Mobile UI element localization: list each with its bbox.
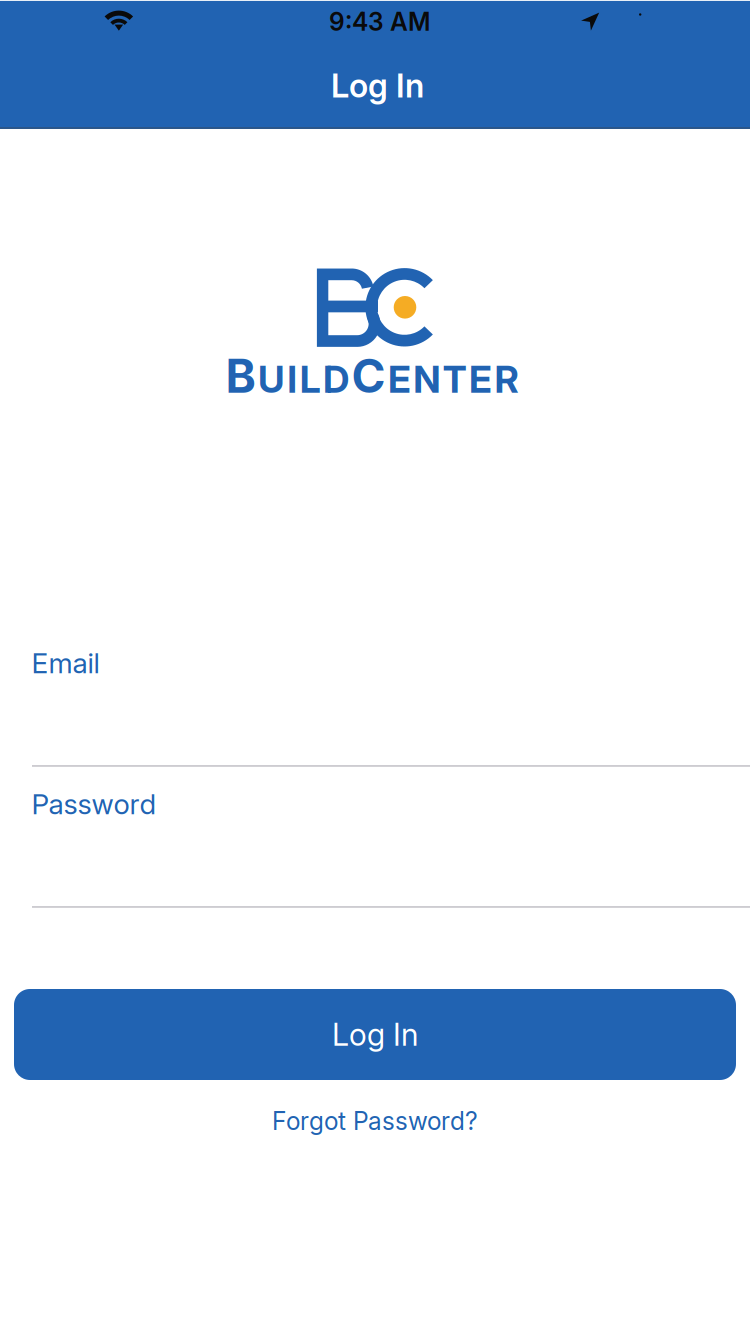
staticText: C	[351, 348, 385, 404]
button[interactable]: Forgot Password?	[225, 1090, 525, 1152]
staticText: B	[225, 348, 255, 404]
staticText: Email	[31, 646, 99, 680]
staticText: Password	[31, 787, 156, 821]
staticText: Log In	[332, 1016, 418, 1053]
staticText: R	[494, 357, 518, 402]
staticText: 9:43 AM	[329, 7, 430, 37]
button[interactable]: Log In	[14, 989, 736, 1080]
staticText: E	[388, 357, 411, 402]
staticText: E	[469, 357, 492, 402]
staticText: Forgot Password?	[272, 1106, 478, 1136]
staticText: T	[443, 357, 467, 402]
staticText: Log In	[331, 66, 424, 105]
staticText: U	[258, 357, 285, 402]
staticText: I	[287, 357, 297, 402]
staticText: L	[300, 357, 321, 402]
staticText: N	[413, 357, 440, 402]
staticText: D	[323, 357, 349, 402]
